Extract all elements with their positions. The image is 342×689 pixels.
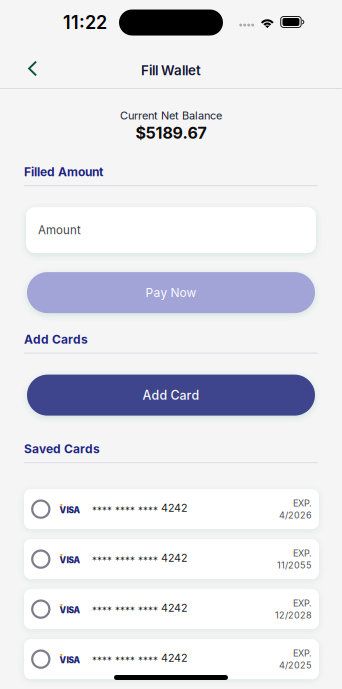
staticText: VISA [59, 555, 80, 565]
staticText: Add Cards [24, 332, 88, 347]
staticText: EXP. [293, 648, 312, 659]
staticText: 4/2026 [279, 510, 312, 521]
staticText: Add Card [142, 388, 199, 403]
button[interactable]: Add Card [27, 375, 315, 416]
button[interactable]: VISA [24, 639, 319, 679]
staticText: 4242 [161, 651, 188, 664]
staticText: Pay Now [145, 285, 196, 300]
button[interactable]: VISA [24, 589, 319, 629]
staticText: Fill Wallet [141, 62, 201, 78]
staticText: EXP. [293, 598, 312, 609]
staticText: VISA [59, 605, 80, 615]
staticText: VISA [59, 505, 80, 515]
staticText: 11:22 [63, 12, 107, 33]
staticText: 4242 [161, 501, 188, 514]
staticText: 4242 [161, 601, 188, 614]
staticText: EXP. [293, 498, 312, 509]
staticText: **** **** **** [92, 505, 158, 517]
staticText: Current Net Balance [120, 109, 222, 122]
staticText: VISA [59, 655, 80, 665]
staticText: **** **** **** [92, 655, 158, 667]
button[interactable]: VISA [24, 539, 319, 579]
staticText: 4/2025 [279, 660, 312, 671]
button[interactable]: Back [0, 51, 47, 84]
staticText: EXP. [293, 548, 312, 559]
staticText: Amount [38, 223, 81, 237]
staticText: 4242 [161, 551, 188, 564]
staticText: Saved Cards [24, 442, 100, 456]
staticText: Filled Amount [24, 165, 103, 179]
staticText: **** **** **** [92, 555, 158, 567]
staticText: **** **** **** [92, 605, 158, 617]
staticText: $5189.67 [135, 123, 206, 143]
button[interactable]: VISA [24, 489, 319, 529]
button[interactable]: Pay Now [27, 272, 315, 313]
staticText: 11/2055 [277, 560, 312, 571]
staticText: 12/2028 [275, 610, 312, 621]
